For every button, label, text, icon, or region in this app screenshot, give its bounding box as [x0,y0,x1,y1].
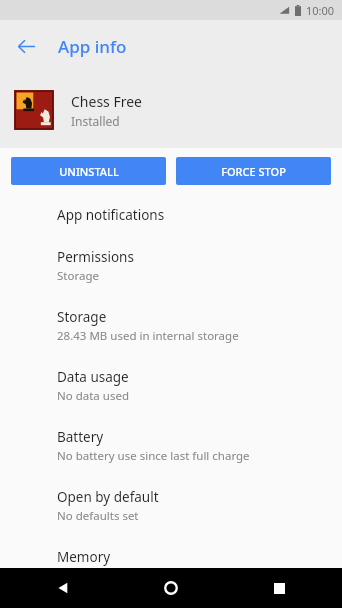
button[interactable]: Open by default [0,476,342,536]
button[interactable]: Memory [0,536,342,596]
staticText: Data usage [57,368,129,386]
staticText: 28.43 MB used in internal storage [57,328,239,344]
button[interactable]: Permissions [0,236,342,296]
staticText: No data used [57,388,129,404]
button[interactable]: Home [154,571,188,605]
staticText: UNINSTALL [59,164,119,179]
staticText: App info [58,35,127,58]
staticText: Permissions [57,248,134,266]
staticText: No defaults set [57,508,139,524]
staticText: Avg. 0 B used in last 3 hours [57,568,209,584]
button[interactable]: Chess Free [0,72,342,148]
staticText: App notifications [57,206,165,224]
staticText: Installed [71,113,120,129]
button[interactable]: Battery [0,416,342,476]
staticText: Memory [57,548,111,566]
button[interactable]: FORCE STOP [176,157,331,185]
button[interactable]: Storage [0,296,342,356]
button[interactable]: Recent apps [262,571,296,605]
button[interactable]: App notifications [0,194,342,236]
button[interactable]: Back [6,26,46,66]
staticText: Battery [57,428,104,446]
button[interactable]: UNINSTALL [11,157,166,185]
staticText: Open by default [57,488,159,506]
staticText: Storage [57,308,107,326]
staticText: 10:00 [306,3,335,18]
staticText: No battery use since last full charge [57,448,250,464]
button[interactable]: Back [46,571,80,605]
staticText: FORCE STOP [221,164,286,179]
staticText: Storage [57,268,99,284]
button[interactable]: Data usage [0,356,342,416]
staticText: Chess Free [71,92,143,111]
